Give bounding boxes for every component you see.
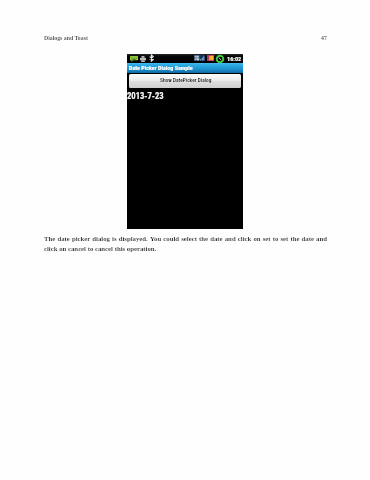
button[interactable]: Show DatePicker Dialog <box>129 74 241 88</box>
staticText: 16:02 <box>227 55 242 62</box>
staticText: Date Picker Dialog Sample <box>129 64 193 71</box>
staticText: 47 <box>321 35 327 41</box>
staticText: The date picker dialog is displayed. You… <box>44 235 327 253</box>
staticText: Dialogs and Toast <box>44 35 88 41</box>
staticText: 2013-7-23 <box>127 91 164 101</box>
staticText: Show DatePicker Dialog <box>160 77 212 83</box>
